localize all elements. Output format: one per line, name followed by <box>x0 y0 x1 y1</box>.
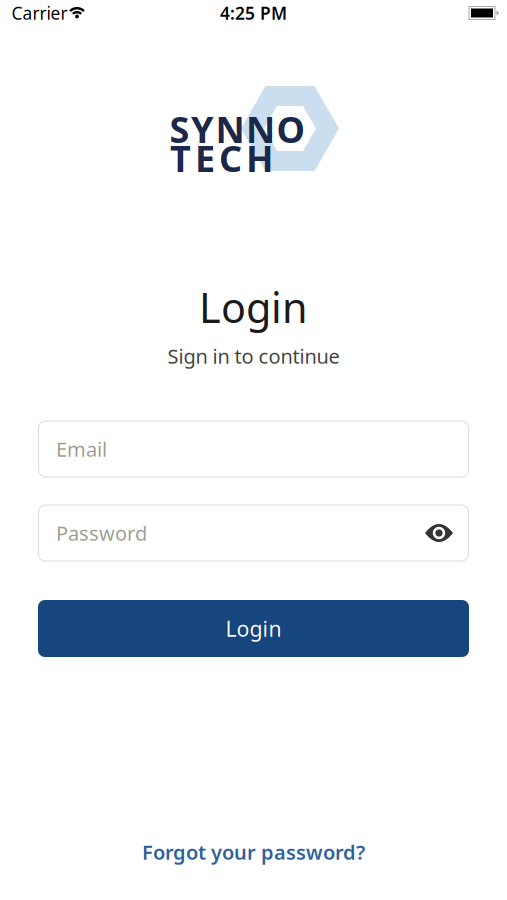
staticText: Password <box>56 520 147 546</box>
textField[interactable]: Email <box>56 436 451 462</box>
staticText: Login <box>199 280 308 334</box>
staticText: Forgot your password? <box>142 839 365 865</box>
button[interactable]: Show password <box>417 511 461 555</box>
staticText: Carrier <box>11 1 67 24</box>
textField[interactable]: Password <box>56 520 451 546</box>
staticText: Login <box>225 614 281 643</box>
button[interactable]: Forgot your password? <box>142 839 365 865</box>
button[interactable]: Login <box>38 600 469 657</box>
staticText: SYNNO <box>169 105 304 153</box>
staticText: Sign in to continue <box>167 343 339 369</box>
staticText: Email <box>56 436 107 462</box>
staticText: 4:25 PM <box>220 1 287 24</box>
staticText: TECH <box>170 134 274 182</box>
